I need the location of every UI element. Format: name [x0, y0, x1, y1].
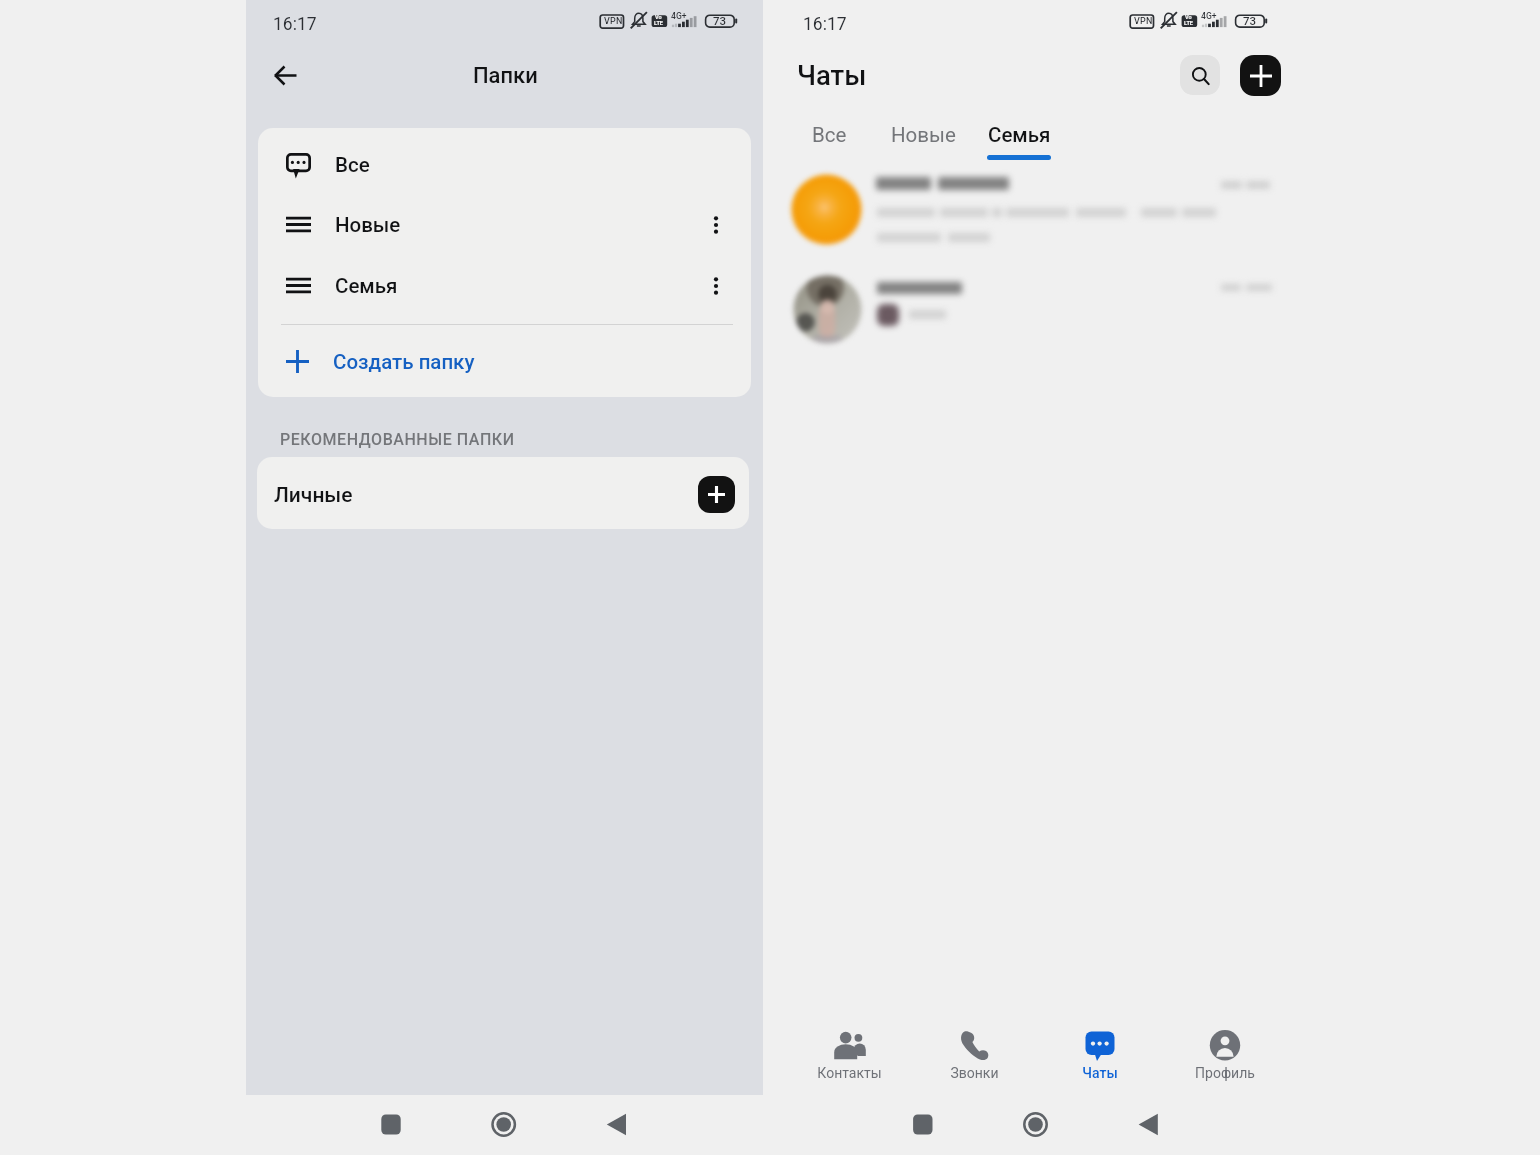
button[interactable]: Личные: [257, 457, 749, 529]
staticText: Все: [812, 123, 847, 147]
button[interactable]: More options: [694, 194, 738, 255]
staticText: LTE: [1184, 20, 1194, 27]
button[interactable]: Add folder: [698, 476, 735, 513]
staticText: 4G+: [1201, 11, 1217, 21]
staticText: Личные: [274, 483, 353, 508]
button[interactable]: More options: [694, 255, 738, 316]
staticText: Vo: [1185, 14, 1192, 21]
button[interactable]: Семья: [258, 255, 751, 316]
staticText: VPN: [1134, 16, 1153, 27]
button[interactable]: Чаты: [1037, 1023, 1162, 1083]
staticText: РЕКОМЕНДОВАННЫЕ ПАПКИ: [280, 430, 515, 449]
staticText: 73: [1243, 14, 1257, 27]
staticText: Семья: [988, 123, 1051, 147]
staticText: Чаты: [1082, 1065, 1118, 1081]
staticText: Профиль: [1195, 1065, 1255, 1081]
staticText: Все: [335, 153, 370, 177]
button[interactable]: Новые: [258, 194, 751, 255]
staticText: Создать папку: [333, 350, 475, 374]
button[interactable]: Search: [1180, 55, 1220, 95]
staticText: VPN: [604, 16, 623, 27]
button[interactable]: Все: [258, 134, 751, 195]
button[interactable]: Звонки: [912, 1023, 1037, 1083]
button[interactable]: Новые: [881, 115, 965, 155]
staticText: 16:17: [803, 14, 847, 35]
button[interactable]: [776, 272, 1297, 352]
staticText: Звонки: [950, 1065, 999, 1081]
button[interactable]: Семья: [977, 115, 1061, 155]
staticText: Новые: [335, 213, 401, 237]
staticText: Чаты: [797, 59, 867, 91]
staticText: Vo: [655, 14, 662, 21]
staticText: 73: [713, 14, 727, 27]
staticText: 16:17: [273, 14, 317, 35]
button[interactable]: Back: [265, 55, 305, 95]
staticText: Новые: [891, 123, 956, 147]
staticText: Контакты: [817, 1065, 882, 1081]
button[interactable]: [776, 170, 1297, 262]
staticText: Семья: [335, 274, 398, 298]
staticText: LTE: [654, 20, 664, 27]
button[interactable]: Профиль: [1162, 1023, 1287, 1083]
button[interactable]: Контакты: [787, 1023, 912, 1083]
button[interactable]: New chat: [1240, 55, 1281, 96]
button[interactable]: Все: [787, 115, 871, 155]
staticText: Папки: [473, 63, 538, 89]
staticText: 4G+: [671, 11, 687, 21]
button[interactable]: Создать папку: [258, 331, 751, 392]
